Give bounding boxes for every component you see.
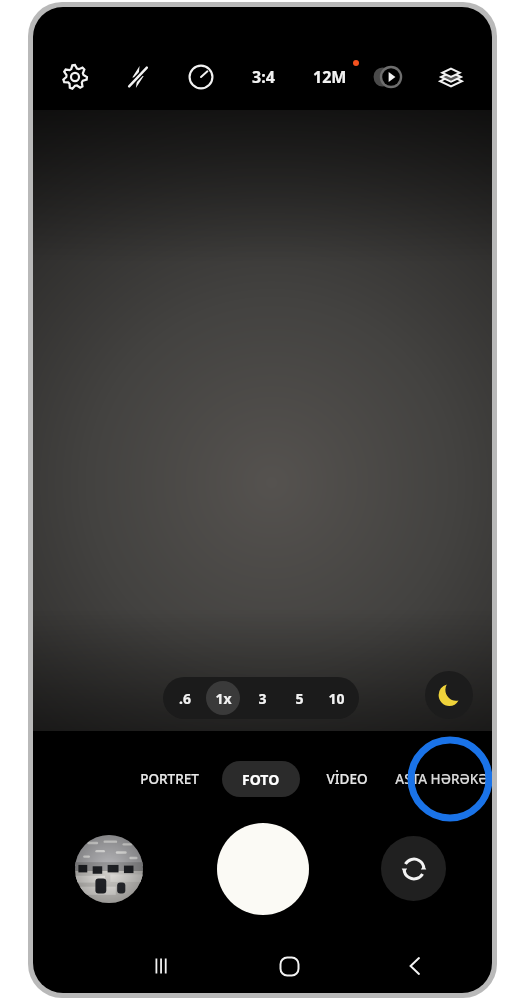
staticText: 10 (328, 689, 345, 708)
staticText: VİDEO (326, 770, 368, 788)
staticText: 12M (313, 66, 347, 88)
button[interactable]: Switch camera (381, 836, 446, 901)
button[interactable]: .6 (166, 677, 204, 719)
staticText: FOTO (242, 770, 280, 789)
button[interactable]: 10 (317, 677, 355, 719)
button[interactable]: Back (385, 943, 445, 989)
button[interactable]: 3:4 (236, 49, 290, 105)
button[interactable]: 1x (204, 677, 242, 719)
button[interactable]: 3 (243, 677, 281, 719)
button[interactable]: Recents (133, 943, 193, 989)
staticText: 1x (215, 689, 232, 708)
staticText: PORTRET (140, 770, 199, 788)
button[interactable]: Filters (426, 49, 476, 105)
button[interactable]: Gallery (75, 835, 143, 903)
staticText: ASTA HƏRƏKƏ (395, 770, 489, 788)
button[interactable]: Night mode (425, 671, 473, 719)
staticText: 5 (295, 689, 304, 708)
staticText: 3 (258, 689, 267, 708)
button[interactable]: 12M (299, 49, 361, 105)
button[interactable]: PORTRET (130, 761, 208, 797)
button[interactable]: Settings (50, 49, 100, 105)
button[interactable]: Flash off (113, 49, 163, 105)
staticText: .6 (179, 689, 191, 708)
button[interactable]: FOTO (222, 761, 300, 797)
button[interactable]: 5 (280, 677, 318, 719)
button[interactable]: Motion photo (365, 49, 415, 105)
button[interactable]: ASTA HƏRƏKƏ (390, 761, 492, 797)
button[interactable]: Timer (176, 49, 226, 105)
staticText: 3:4 (252, 66, 275, 88)
button[interactable]: Home (259, 943, 319, 989)
button[interactable]: VİDEO (316, 761, 378, 797)
button[interactable]: Take photo (217, 823, 309, 915)
